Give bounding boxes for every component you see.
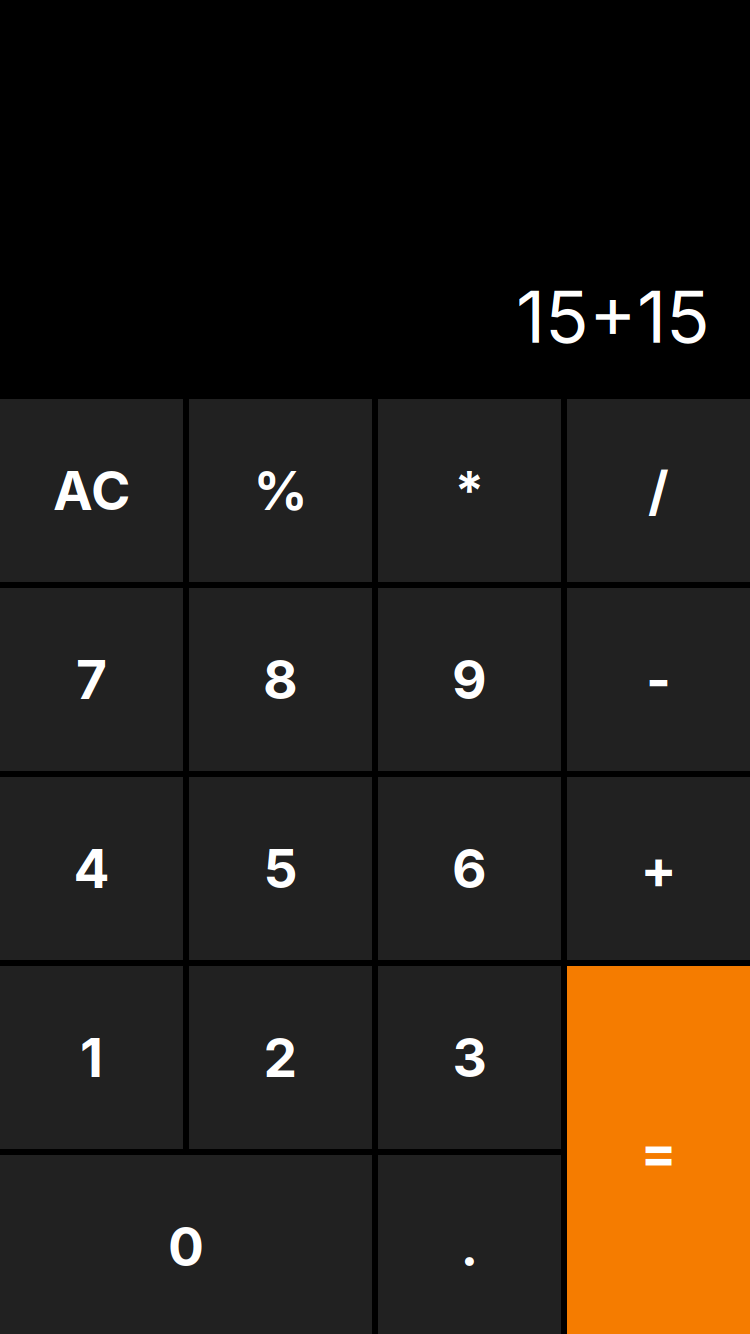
staticText: . [460,1214,478,1279]
button[interactable]: * [378,399,561,582]
staticText: = [640,1120,676,1184]
staticText: 0 [168,1214,204,1279]
staticText: 5 [263,836,297,901]
button[interactable]: 4 [0,777,183,960]
button[interactable]: 2 [189,966,372,1149]
staticText: 9 [452,647,487,712]
button[interactable]: 5 [189,777,372,960]
button[interactable]: AC [0,399,183,582]
button[interactable]: 1 [0,966,183,1149]
staticText: 1 [80,1025,103,1090]
button[interactable]: 8 [189,588,372,771]
staticText: 3 [452,1025,486,1090]
button[interactable]: % [189,399,372,582]
button[interactable]: - [567,588,750,771]
button[interactable]: 0 [0,1155,372,1334]
button[interactable]: + [567,777,750,960]
button[interactable]: 9 [378,588,561,771]
button[interactable]: 7 [0,588,183,771]
staticText: * [454,458,484,523]
staticText: 15+15 [516,273,710,360]
staticText: 4 [73,836,109,901]
button[interactable]: 3 [378,966,561,1149]
staticText: - [646,647,671,712]
button[interactable]: 6 [378,777,561,960]
button[interactable]: = [567,966,750,1334]
staticText: 7 [76,647,107,712]
staticText: 6 [452,836,487,901]
button[interactable]: . [378,1155,561,1334]
staticText: + [640,836,676,901]
staticText: 2 [263,1025,297,1090]
staticText: 8 [263,647,298,712]
button[interactable]: / [567,399,750,582]
staticText: AC [53,458,130,523]
staticText: % [253,458,307,523]
staticText: / [648,458,669,523]
